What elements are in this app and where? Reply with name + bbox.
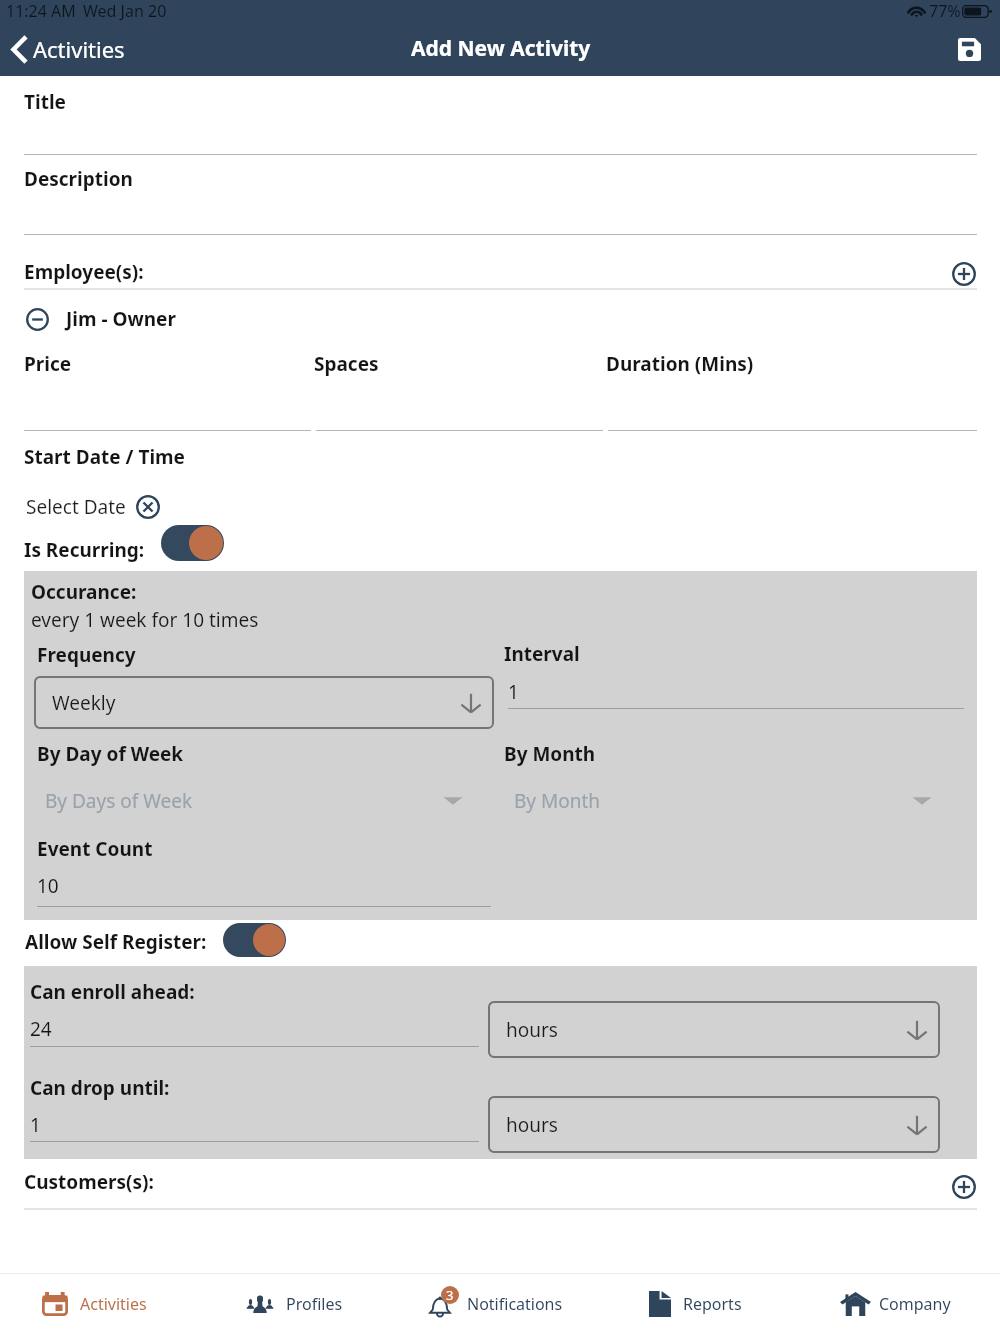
staticText: Start Date / Time xyxy=(24,444,185,470)
button[interactable]: Title field xyxy=(24,86,977,155)
button[interactable]: By Days of Week xyxy=(45,785,463,817)
button[interactable]: Company xyxy=(826,1273,956,1334)
button[interactable]: Toggle xyxy=(223,923,286,957)
staticText: Allow Self Register: xyxy=(25,929,207,955)
button[interactable]: Profiles xyxy=(233,1273,372,1334)
staticText: Activities xyxy=(80,1293,147,1315)
button[interactable]: Event count field xyxy=(37,870,491,907)
button[interactable]: Weekly xyxy=(34,676,494,729)
button[interactable]: hours xyxy=(488,1096,940,1153)
staticText: hours xyxy=(506,1112,558,1138)
staticText: 24 xyxy=(30,1016,52,1042)
staticText: Price xyxy=(24,351,72,377)
staticText: Occurance: xyxy=(31,579,137,605)
button[interactable]: Jim - Owner xyxy=(26,303,176,335)
staticText: 3 xyxy=(446,1286,454,1304)
staticText: By Month xyxy=(514,788,601,814)
staticText: Title xyxy=(24,89,66,115)
button[interactable]: Drop until field xyxy=(30,1109,479,1142)
button[interactable]: Description field xyxy=(24,163,977,235)
button[interactable]: Price field xyxy=(24,348,311,431)
button[interactable]: Select Date xyxy=(24,492,162,522)
button[interactable]: Enroll ahead field xyxy=(30,1013,479,1047)
staticText: Employee(s): xyxy=(24,259,144,285)
staticText: Spaces xyxy=(314,351,379,377)
staticText: Event Count xyxy=(37,836,153,862)
staticText: Duration (Mins) xyxy=(606,351,754,377)
staticText: Description xyxy=(24,166,133,192)
button[interactable]: Spaces field xyxy=(314,348,603,431)
staticText: Wed Jan 20 xyxy=(83,0,167,22)
staticText: 1 xyxy=(508,679,519,705)
staticText: Can enroll ahead: xyxy=(30,979,195,1005)
staticText: Select Date xyxy=(26,494,126,520)
button[interactable]: Duration field xyxy=(606,348,977,431)
staticText: Activities xyxy=(33,34,125,64)
button[interactable]: Activities xyxy=(28,1273,184,1334)
staticText: Is Recurring: xyxy=(24,537,145,563)
staticText: 77% xyxy=(929,0,961,22)
staticText: Add New Activity xyxy=(411,34,591,63)
button[interactable]: By Month xyxy=(514,785,932,817)
staticText: Interval xyxy=(504,641,580,667)
staticText: Profiles xyxy=(286,1293,343,1315)
staticText: Company xyxy=(879,1293,951,1315)
button[interactable]: Add customer xyxy=(948,1171,979,1202)
button[interactable]: Save xyxy=(950,30,988,68)
staticText: hours xyxy=(506,1017,558,1043)
staticText: By Day of Week xyxy=(37,741,184,767)
button[interactable]: Interval field xyxy=(508,676,964,709)
staticText: Weekly xyxy=(52,690,116,716)
staticText: 1 xyxy=(30,1112,41,1138)
staticText: Can drop until: xyxy=(30,1075,170,1101)
staticText: Jim - Owner xyxy=(66,306,176,332)
staticText: Customers(s): xyxy=(24,1169,154,1195)
staticText: By Month xyxy=(504,741,596,767)
button[interactable]: Notifications xyxy=(415,1273,598,1334)
staticText: 10 xyxy=(37,873,59,899)
button[interactable]: Activities xyxy=(0,27,137,71)
staticText: Notifications xyxy=(467,1293,563,1315)
button[interactable]: Toggle xyxy=(161,525,224,561)
staticText: every 1 week for 10 times xyxy=(31,607,259,633)
button[interactable]: hours xyxy=(488,1001,940,1058)
button[interactable]: Add employee xyxy=(948,258,979,289)
staticText: 11:24 AM xyxy=(6,0,76,22)
staticText: Frequency xyxy=(37,642,136,668)
staticText: By Days of Week xyxy=(45,788,193,814)
staticText: Reports xyxy=(683,1293,742,1315)
button[interactable]: Reports xyxy=(635,1273,760,1334)
